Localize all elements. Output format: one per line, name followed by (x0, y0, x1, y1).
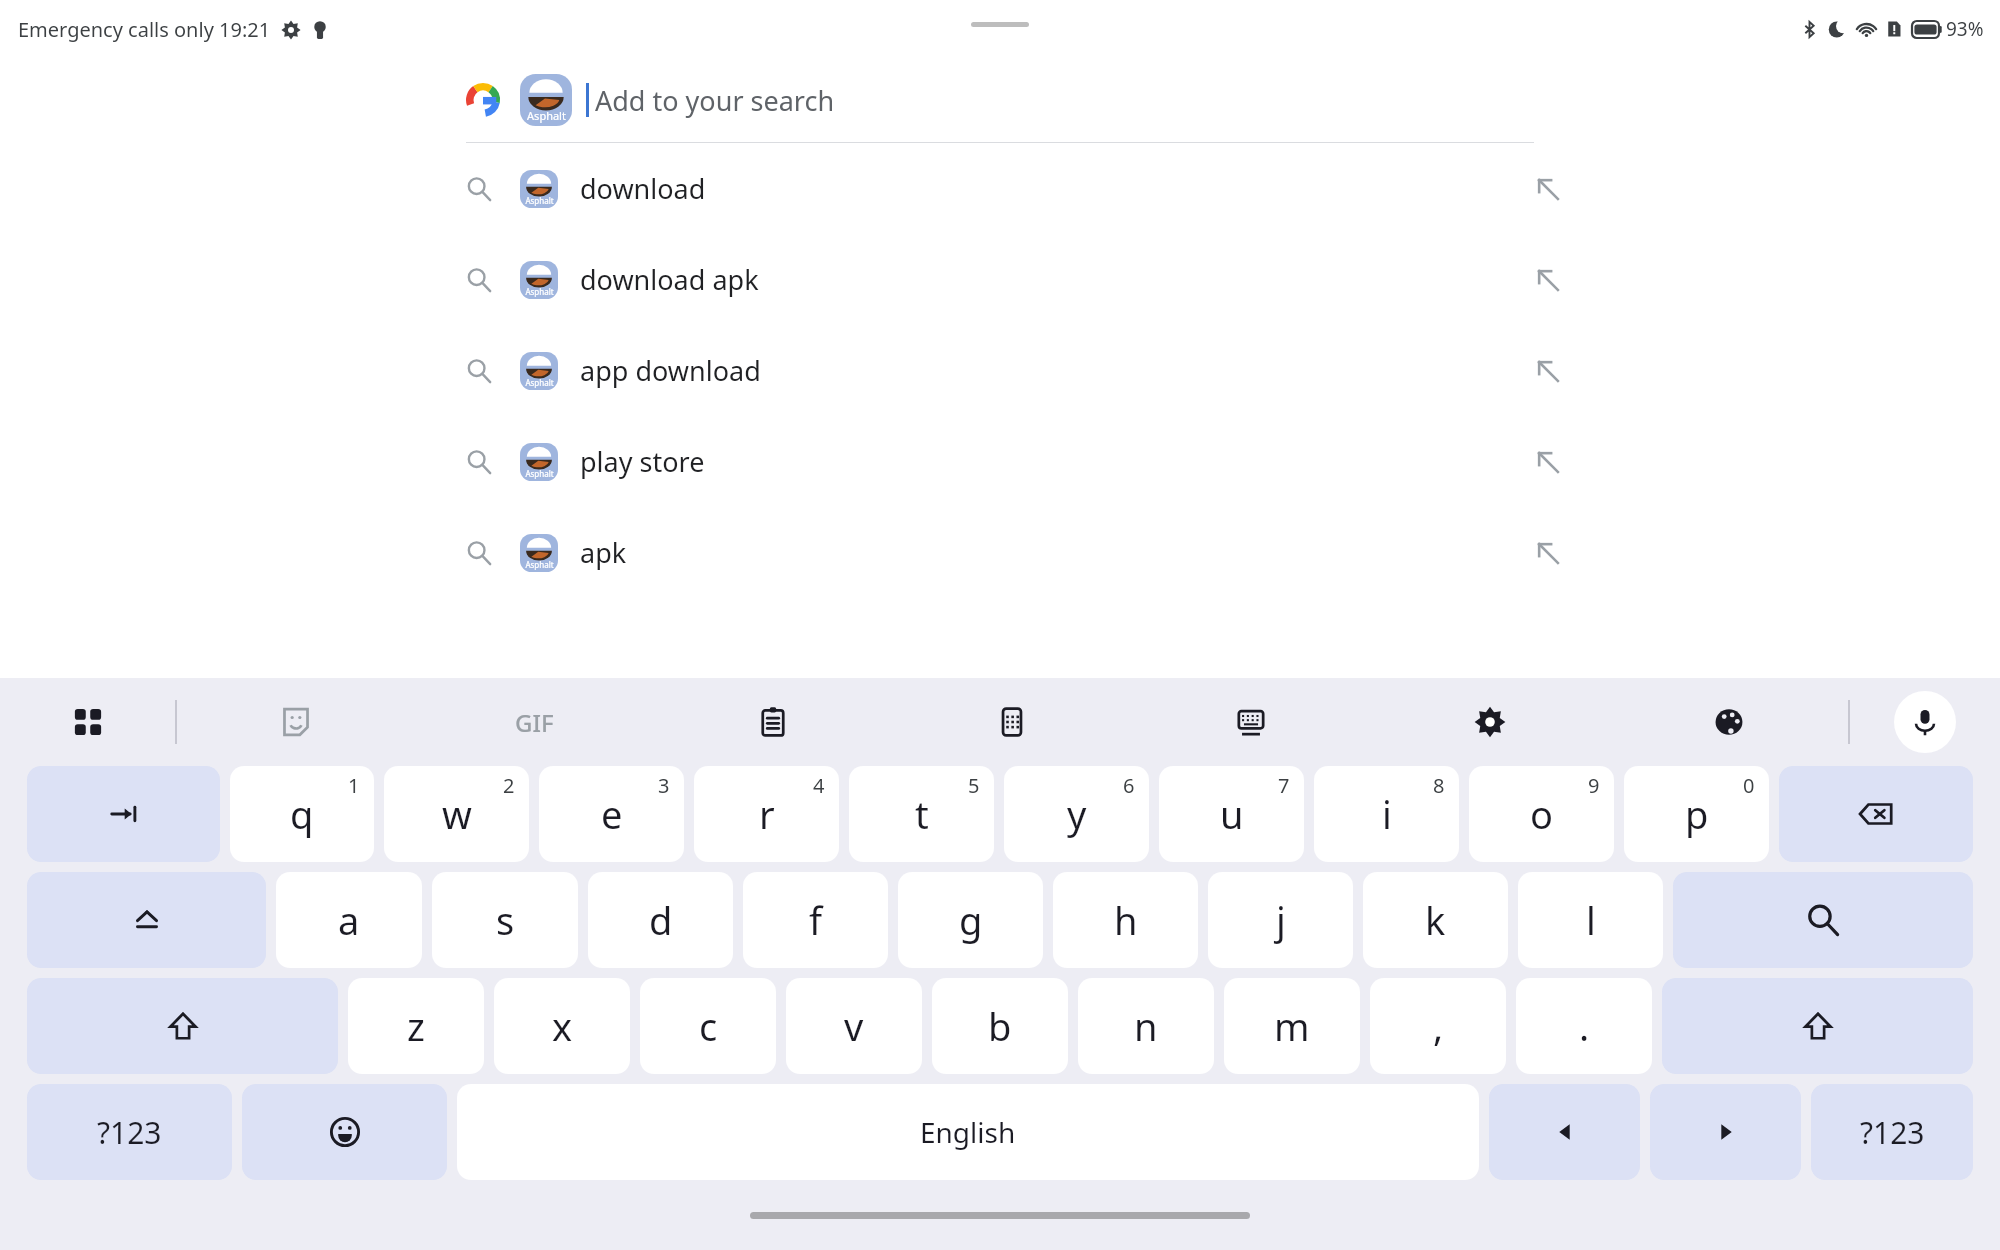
staticText: 2 (503, 772, 515, 799)
button[interactable]: Tab (27, 766, 220, 862)
staticText: download apk (580, 261, 759, 298)
button[interactable]: Insert suggestion (1526, 531, 1570, 575)
button[interactable]: Shift (27, 978, 338, 1074)
button[interactable]: . (1516, 978, 1652, 1074)
staticText: j (1276, 894, 1286, 946)
button[interactable]: l (1518, 872, 1663, 968)
staticText: ?123 (1860, 1112, 1925, 1153)
staticText: c (699, 1000, 718, 1052)
button[interactable]: w (384, 766, 529, 862)
staticText: l (1586, 894, 1596, 946)
button[interactable]: j (1208, 872, 1353, 968)
staticText: 0 (1743, 772, 1755, 799)
button[interactable]: d (588, 872, 733, 968)
button[interactable]: v (786, 978, 922, 1074)
staticText: 4 (813, 772, 825, 799)
button[interactable]: x (494, 978, 630, 1074)
button[interactable]: Backspace (1779, 766, 1973, 862)
button[interactable]: Asphalt (0, 416, 2000, 507)
staticText: app download (580, 352, 761, 389)
staticText: f (809, 894, 823, 946)
button[interactable]: q (230, 766, 374, 862)
button[interactable]: Emoji (242, 1084, 447, 1180)
button[interactable]: o (1469, 766, 1614, 862)
button[interactable]: Insert suggestion (1526, 258, 1570, 302)
button[interactable]: e (539, 766, 684, 862)
button[interactable]: GIF (510, 698, 558, 746)
button[interactable]: Number pad (986, 696, 1038, 748)
button[interactable]: p (1624, 766, 1769, 862)
staticText: 93% (1946, 16, 1984, 42)
button[interactable]: Insert suggestion (1526, 440, 1570, 484)
button[interactable]: Apps (62, 696, 114, 748)
button[interactable]: z (348, 978, 484, 1074)
staticText: Asphalt (527, 108, 566, 123)
button[interactable]: Caps lock (27, 872, 266, 968)
button[interactable]: n (1078, 978, 1214, 1074)
button[interactable]: t (849, 766, 994, 862)
staticText: p (1685, 788, 1709, 840)
staticText: Asphalt (525, 468, 554, 479)
button[interactable]: Theme (1703, 696, 1755, 748)
staticText: v (844, 1000, 864, 1052)
button[interactable]: a (276, 872, 422, 968)
button[interactable]: b (932, 978, 1068, 1074)
staticText: z (407, 1000, 425, 1052)
staticText: q (290, 788, 314, 840)
staticText: k (1425, 894, 1446, 946)
button[interactable]: Insert suggestion (1526, 167, 1570, 211)
staticText: Emergency calls only 19:21 (18, 16, 271, 43)
button[interactable]: Stickers (270, 696, 322, 748)
button[interactable]: ?123 (1811, 1084, 1973, 1180)
button[interactable]: Search (1673, 872, 1973, 968)
staticText: 1 (348, 772, 360, 799)
staticText: ?123 (97, 1112, 162, 1153)
staticText: Asphalt (525, 559, 554, 570)
staticText: b (988, 1000, 1012, 1052)
staticText: play store (580, 443, 705, 480)
staticText: a (338, 894, 360, 946)
button[interactable]: Asphalt (0, 143, 2000, 234)
button[interactable]: Move cursor right (1650, 1084, 1801, 1180)
button[interactable]: Settings (1464, 696, 1516, 748)
staticText: 5 (968, 772, 980, 799)
button[interactable]: f (743, 872, 888, 968)
staticText: e (601, 788, 623, 840)
button[interactable]: Asphalt (0, 507, 2000, 598)
button[interactable]: Insert suggestion (1526, 349, 1570, 393)
button[interactable]: u (1159, 766, 1304, 862)
staticText: h (1114, 894, 1138, 946)
button[interactable]: i (1314, 766, 1459, 862)
staticText: apk (580, 534, 627, 571)
staticText: 3 (658, 772, 670, 799)
staticText: s (496, 894, 515, 946)
button[interactable]: s (432, 872, 578, 968)
staticText: m (1274, 1000, 1310, 1052)
button[interactable]: r (694, 766, 839, 862)
button[interactable]: English (457, 1084, 1479, 1180)
button[interactable]: Move cursor left (1489, 1084, 1640, 1180)
button[interactable]: y (1004, 766, 1149, 862)
button[interactable]: Asphalt (0, 234, 2000, 325)
staticText: w (442, 788, 472, 840)
button[interactable]: ?123 (27, 1084, 232, 1180)
button[interactable]: , (1370, 978, 1506, 1074)
button[interactable]: Keyboard mode (1225, 696, 1277, 748)
staticText: GIF (515, 706, 554, 739)
button[interactable]: Clipboard (747, 696, 799, 748)
staticText: x (552, 1000, 573, 1052)
button[interactable]: m (1224, 978, 1360, 1074)
staticText: y (1067, 788, 1087, 840)
button[interactable]: h (1053, 872, 1198, 968)
staticText: Asphalt (525, 377, 554, 388)
staticText: o (1530, 788, 1553, 840)
staticText: u (1220, 788, 1244, 840)
staticText: 9 (1588, 772, 1600, 799)
button[interactable]: Shift (1662, 978, 1973, 1074)
button[interactable]: c (640, 978, 776, 1074)
button[interactable]: Asphalt (0, 325, 2000, 416)
button[interactable]: k (1363, 872, 1508, 968)
button[interactable]: Voice input (1894, 691, 1956, 753)
button[interactable]: g (898, 872, 1043, 968)
staticText: r (759, 788, 775, 840)
